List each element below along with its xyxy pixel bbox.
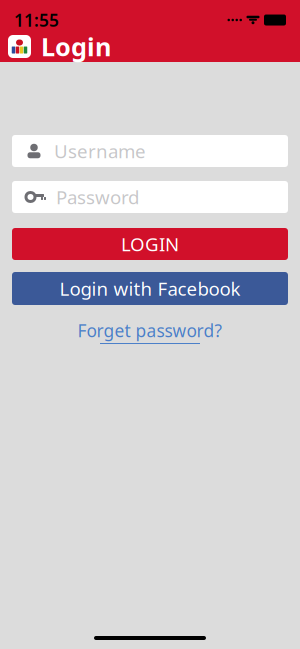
staticText: Forget password?: [77, 319, 222, 342]
staticText: Username: [54, 139, 146, 163]
button[interactable]: Forget password?: [69, 317, 230, 346]
staticText: 11:55: [14, 8, 59, 31]
staticText: Login: [41, 30, 111, 63]
button[interactable]: LOGIN: [12, 228, 288, 260]
staticText: LOGIN: [121, 232, 179, 256]
staticText: Login with Facebook: [59, 276, 240, 301]
button[interactable]: Login with Facebook: [12, 272, 288, 305]
staticText: Password: [56, 185, 139, 209]
